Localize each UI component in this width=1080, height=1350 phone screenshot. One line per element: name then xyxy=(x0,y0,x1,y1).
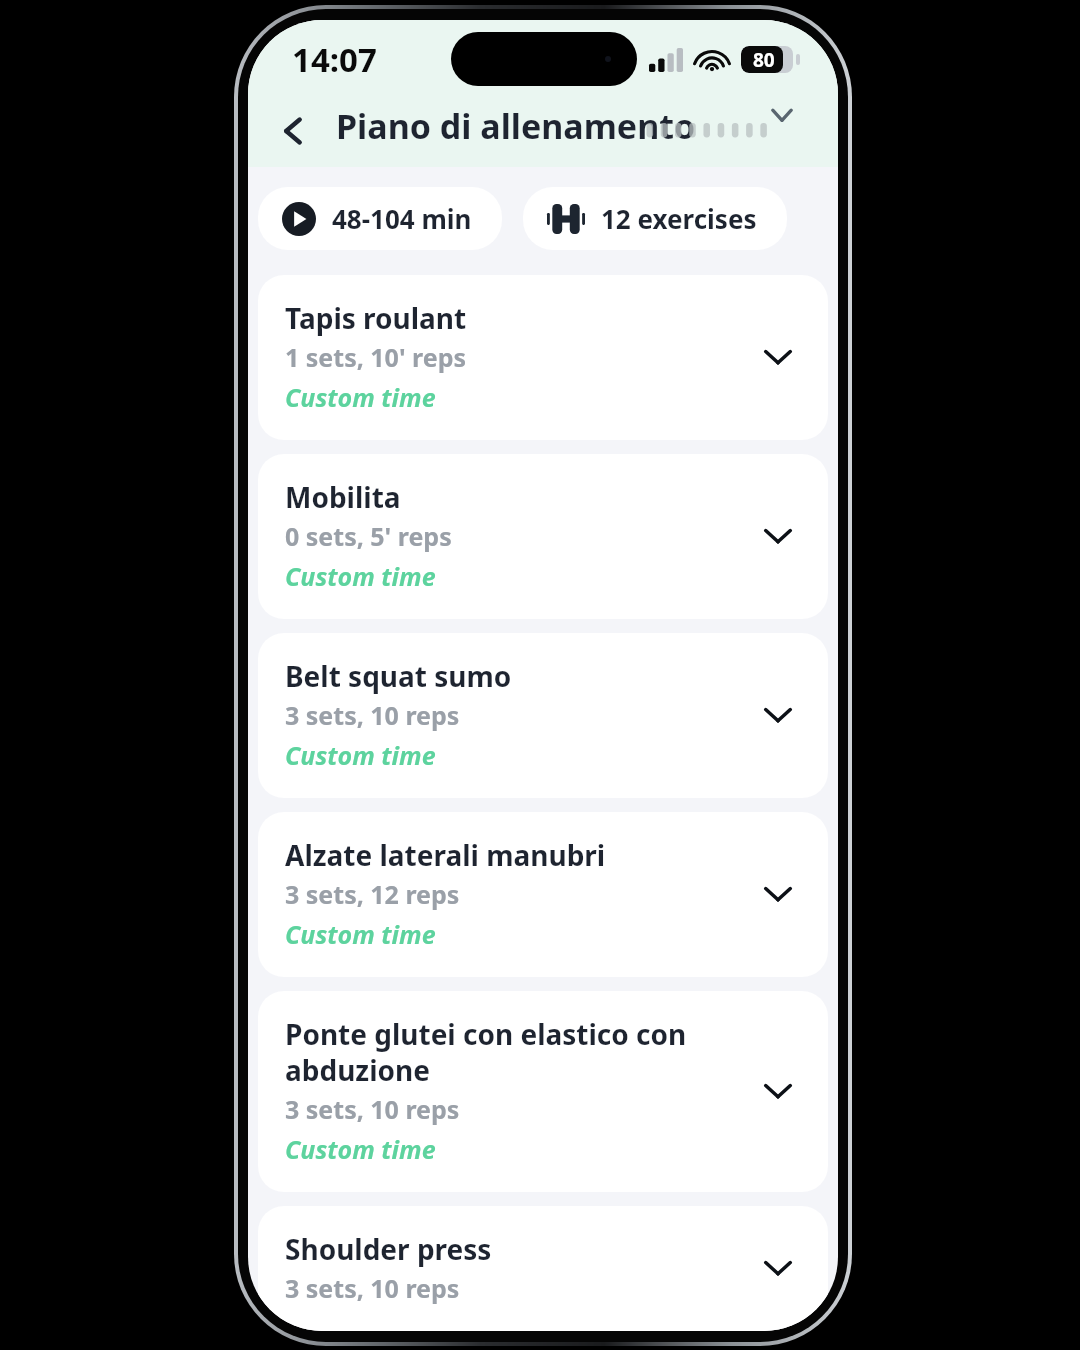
staticText: 48-104 min xyxy=(332,201,472,236)
button[interactable]: Expand xyxy=(760,93,804,137)
staticText: Belt squat sumo xyxy=(285,657,512,695)
button[interactable]: Back xyxy=(266,103,322,159)
button[interactable]: Expand exercise xyxy=(752,689,804,741)
button[interactable]: 48-104 min xyxy=(258,187,502,250)
button[interactable]: Tapis roulant xyxy=(258,275,828,440)
staticText: Custom time xyxy=(285,559,436,593)
staticText: Custom time xyxy=(285,738,436,772)
button[interactable]: Mobilita xyxy=(258,454,828,619)
staticText: Alzate laterali manubri xyxy=(285,836,606,874)
staticText: Custom time xyxy=(285,380,436,414)
staticText: Piano di allenamento xyxy=(336,103,696,149)
button[interactable]: Shoulder press xyxy=(258,1206,828,1331)
staticText: Ponte glutei con elastico con abduzione xyxy=(285,1015,742,1089)
button[interactable]: Expand exercise xyxy=(752,510,804,562)
staticText: Tapis roulant xyxy=(285,299,467,337)
button[interactable]: Expand exercise xyxy=(752,868,804,920)
staticText: Shoulder press xyxy=(285,1230,492,1268)
button[interactable]: Expand exercise xyxy=(752,1065,804,1117)
button[interactable]: Expand exercise xyxy=(752,1242,804,1294)
button[interactable]: Belt squat sumo xyxy=(258,633,828,798)
button[interactable]: Alzate laterali manubri xyxy=(258,812,828,977)
staticText: 0 sets, 5' reps xyxy=(285,519,452,553)
staticText: Custom time xyxy=(285,917,436,951)
staticText: 80 xyxy=(753,47,775,73)
staticText: 12 exercises xyxy=(601,201,757,236)
staticText: Mobilita xyxy=(285,478,401,516)
button[interactable]: Ponte glutei con elastico con abduzione xyxy=(258,991,828,1192)
button[interactable]: 12 exercises xyxy=(523,187,787,250)
button[interactable]: Expand exercise xyxy=(752,331,804,383)
staticText: 3 sets, 10 reps xyxy=(285,1271,460,1305)
staticText: 3 sets, 12 reps xyxy=(285,877,460,911)
staticText: 1 sets, 10' reps xyxy=(285,340,467,374)
staticText: Custom time xyxy=(285,1132,436,1166)
staticText: 14:07 xyxy=(292,37,377,82)
staticText: 3 sets, 10 reps xyxy=(285,1092,460,1126)
staticText: 3 sets, 10 reps xyxy=(285,698,460,732)
